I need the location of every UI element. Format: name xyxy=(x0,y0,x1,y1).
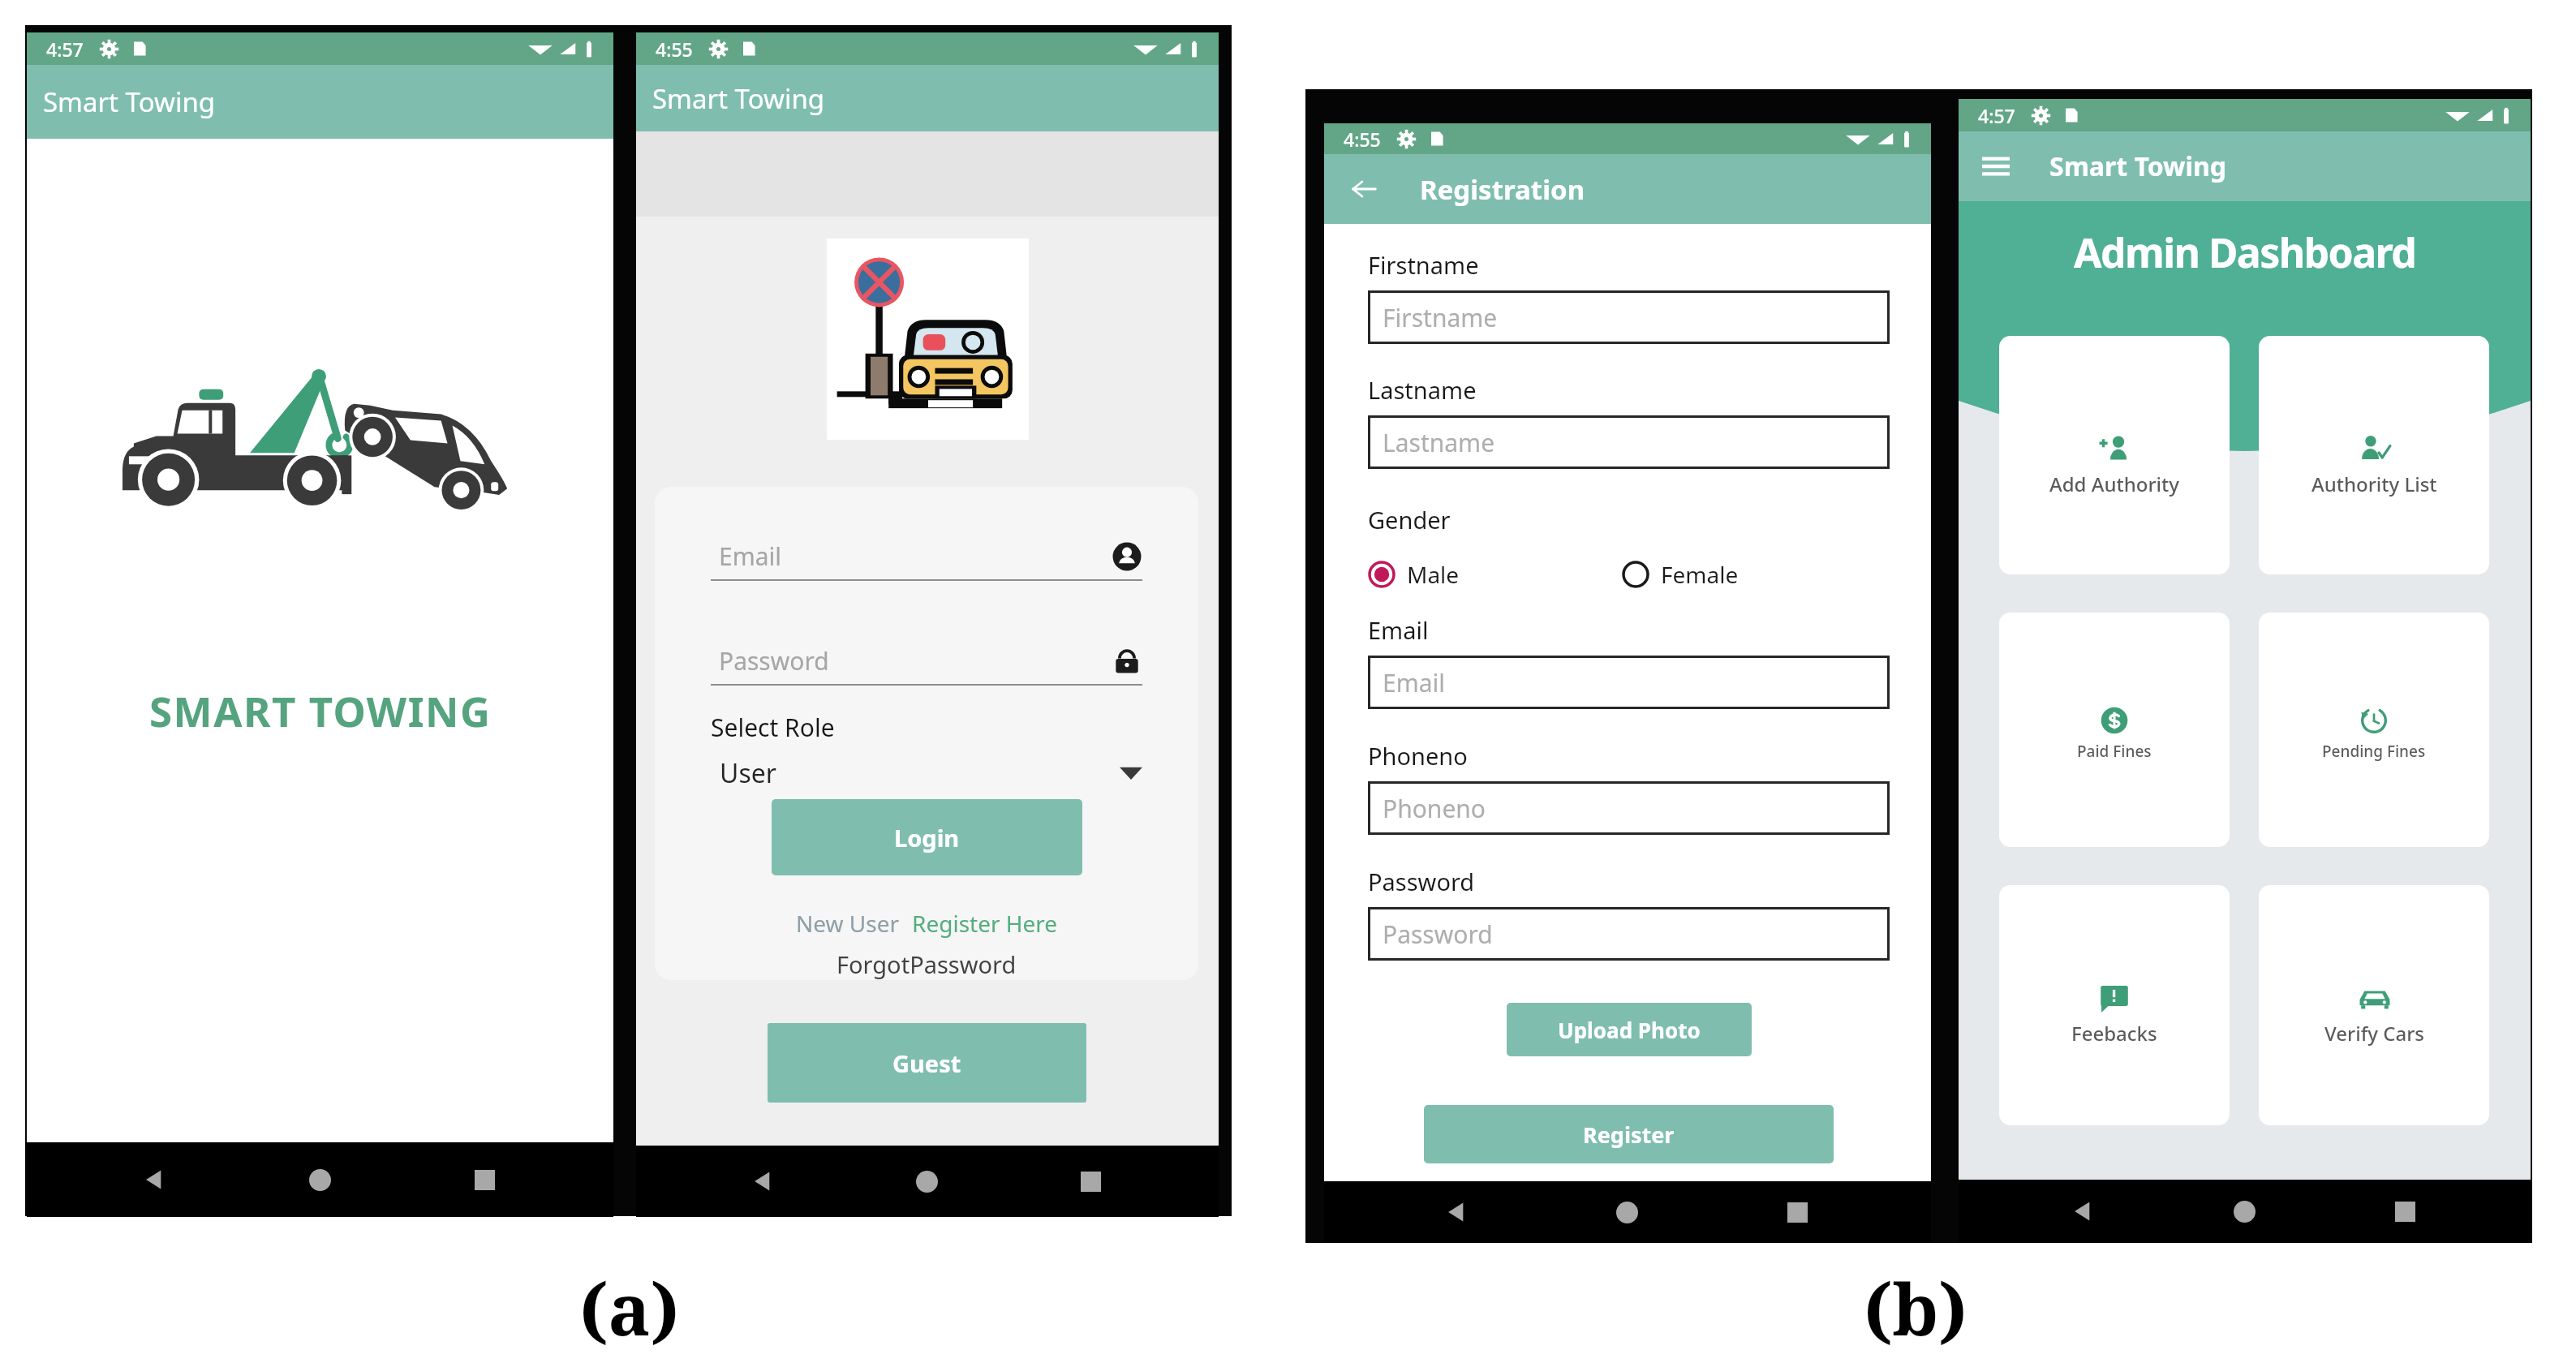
staticText: Gender xyxy=(1368,504,1451,535)
button[interactable]: Recents xyxy=(2385,1191,2425,1232)
button[interactable]: Female xyxy=(1622,559,1739,590)
button[interactable]: Home xyxy=(299,1159,340,1200)
button[interactable]: Back xyxy=(1344,169,1384,209)
staticText: Firstname xyxy=(1383,301,1498,334)
staticText: Email xyxy=(1383,666,1446,699)
staticText: New User xyxy=(796,908,900,939)
button[interactable]: Back xyxy=(134,1159,174,1200)
staticText: 4:57 xyxy=(1978,103,2015,128)
button[interactable]: Recents xyxy=(1777,1192,1817,1232)
staticText: Phoneno xyxy=(1383,792,1486,825)
staticText: Login xyxy=(894,822,960,853)
staticText: Male xyxy=(1407,559,1460,590)
staticText: Smart Towing xyxy=(43,84,216,120)
button[interactable]: Back xyxy=(2062,1191,2103,1232)
staticText: (b) xyxy=(1864,1259,1967,1348)
button[interactable]: Back xyxy=(742,1161,783,1202)
button[interactable]: Pending Fines xyxy=(2259,613,2489,847)
staticText: Feebacks xyxy=(2071,1020,2157,1047)
staticText: Verify Cars xyxy=(2324,1020,2424,1047)
staticText: Paid Fines xyxy=(2077,741,2152,762)
staticText: Authority List xyxy=(2312,471,2437,497)
button[interactable]: Recents xyxy=(1070,1161,1111,1202)
staticText: 4:55 xyxy=(656,37,693,62)
staticText: Add Authority xyxy=(2049,471,2179,497)
button[interactable]: Register xyxy=(1424,1105,1834,1163)
staticText: Upload Photo xyxy=(1558,1016,1701,1044)
button[interactable]: Menu xyxy=(1976,147,2015,186)
button[interactable]: Home xyxy=(906,1161,947,1202)
button[interactable]: Authority List xyxy=(2259,336,2489,574)
staticText: (a) xyxy=(579,1259,680,1348)
staticText: Smart Towing xyxy=(652,80,825,117)
staticText: User xyxy=(720,755,776,791)
staticText: Guest xyxy=(892,1047,961,1079)
staticText: Female xyxy=(1661,559,1739,590)
button[interactable]: Verify Cars xyxy=(2259,885,2489,1125)
button[interactable]: Recents xyxy=(464,1159,505,1200)
button[interactable]: Login xyxy=(772,799,1082,875)
staticText: ForgotPassword xyxy=(836,948,1017,980)
button[interactable]: Guest xyxy=(768,1023,1086,1103)
staticText: Password xyxy=(719,644,829,677)
button[interactable]: Upload Photo xyxy=(1507,1003,1752,1056)
staticText: 4:57 xyxy=(46,37,84,62)
staticText: Phoneno xyxy=(1368,740,1468,772)
button[interactable]: Paid Fines xyxy=(1999,613,2230,847)
staticText: Lastname xyxy=(1383,426,1495,459)
button[interactable]: Home xyxy=(1606,1192,1647,1232)
staticText: Registration xyxy=(1420,171,1585,208)
button[interactable]: Back xyxy=(1436,1192,1477,1232)
staticText: Firstname xyxy=(1368,249,1479,281)
button[interactable]: Feebacks xyxy=(1999,885,2230,1125)
staticText: Password xyxy=(1368,866,1475,897)
staticText: Lastname xyxy=(1368,374,1477,406)
button[interactable]: Male xyxy=(1368,559,1460,590)
staticText: Register Here xyxy=(912,908,1058,939)
button[interactable]: Register Here xyxy=(912,908,1058,939)
staticText: Admin Dashboard xyxy=(2074,225,2416,280)
staticText: Smart Towing xyxy=(2049,148,2227,184)
button[interactable]: Home xyxy=(2224,1191,2264,1232)
staticText: Email xyxy=(1368,614,1429,646)
staticText: Select Role xyxy=(711,711,835,744)
staticText: Pending Fines xyxy=(2322,741,2426,762)
staticText: Password xyxy=(1383,918,1493,951)
button[interactable]: Add Authority xyxy=(1999,336,2230,574)
staticText: Email xyxy=(719,540,782,573)
staticText: SMART TOWING xyxy=(149,682,492,738)
staticText: Register xyxy=(1583,1120,1675,1150)
staticText: 4:55 xyxy=(1344,127,1381,152)
button[interactable]: ForgotPassword xyxy=(711,948,1142,980)
